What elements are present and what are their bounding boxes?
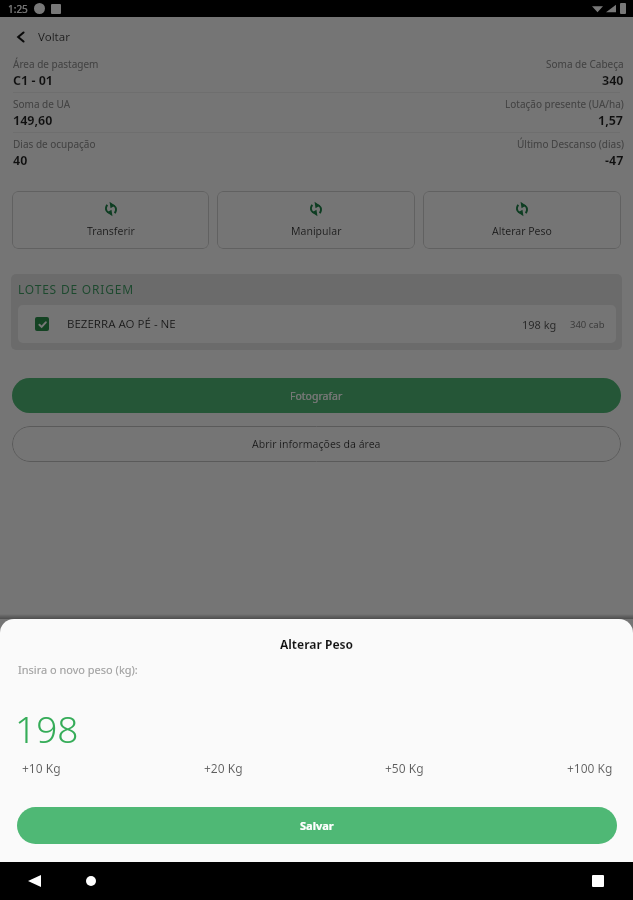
staticText: 198 [15, 703, 79, 753]
staticText: -47 [605, 152, 624, 169]
staticText: Insira o novo peso (kg): [18, 662, 138, 677]
button[interactable]: +50 Kg [385, 760, 424, 776]
staticText: Alterar Peso [492, 224, 552, 238]
button[interactable]: Abrir informações da área [12, 426, 621, 462]
button[interactable]: Home [77, 867, 105, 895]
staticText: 149,60 [13, 112, 53, 129]
staticText: 340 [602, 72, 624, 89]
button[interactable]: +10 Kg [22, 760, 61, 776]
button[interactable]: Transferir [12, 191, 209, 249]
staticText: +20 Kg [204, 760, 243, 776]
staticText: +100 Kg [567, 760, 613, 776]
button[interactable]: Fotografar [12, 378, 621, 413]
staticText: Dias de ocupação [13, 137, 96, 151]
staticText: LOTES DE ORIGEM [18, 281, 134, 297]
staticText: Último Descanso (dias) [517, 137, 624, 151]
button[interactable]: Back [20, 867, 48, 895]
staticText: 198 kg [522, 317, 557, 332]
staticText: BEZERRA AO PÉ - NE [67, 316, 176, 332]
button[interactable]: Alterar Peso [423, 191, 621, 249]
staticText: +50 Kg [385, 760, 424, 776]
button[interactable]: Voltar [0, 17, 633, 50]
button[interactable]: +20 Kg [204, 760, 243, 776]
staticText: Manipular [291, 224, 342, 238]
button[interactable]: BEZERRA AO PÉ - NE [18, 305, 616, 343]
button[interactable]: Recents [584, 867, 612, 895]
staticText: Soma de Cabeça [546, 57, 624, 71]
staticText: Soma de UA [13, 97, 71, 111]
staticText: 1:25 [8, 2, 28, 16]
staticText: 40 [13, 152, 28, 169]
staticText: 340 cab [570, 318, 605, 331]
staticText: 1,57 [598, 112, 624, 129]
staticText: Transferir [87, 224, 135, 238]
staticText: Lotação presente (UA/ha) [505, 97, 624, 111]
staticText: Voltar [38, 29, 70, 45]
staticText: Salvar [300, 818, 334, 833]
button[interactable]: +100 Kg [567, 760, 613, 776]
staticText: +10 Kg [22, 760, 61, 776]
staticText: Fotografar [290, 389, 343, 403]
button[interactable]: Manipular [217, 191, 415, 249]
staticText: Área de pastagem [13, 57, 99, 71]
staticText: C1 - 01 [13, 72, 53, 89]
button[interactable]: Salvar [17, 807, 617, 844]
staticText: Alterar Peso [0, 636, 633, 652]
staticText: Abrir informações da área [252, 437, 381, 451]
